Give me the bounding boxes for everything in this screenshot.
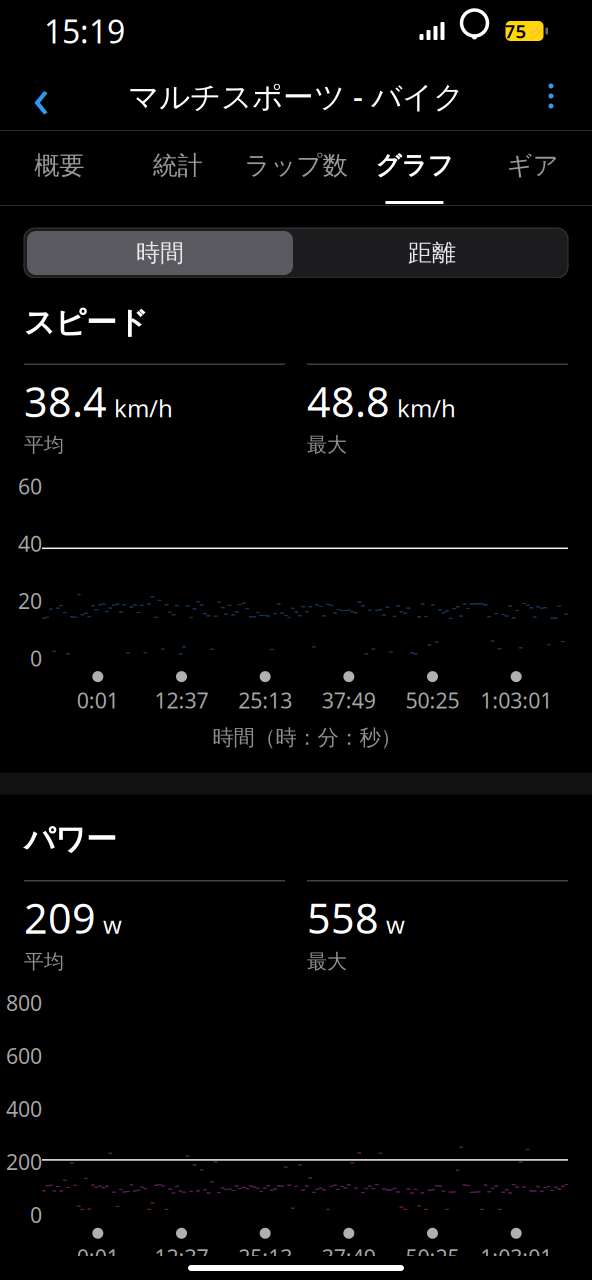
staticText: 400 xyxy=(6,1095,42,1123)
staticText: 40 xyxy=(18,529,42,558)
button[interactable]: ラップ数 xyxy=(237,130,355,206)
staticText: ラップ数 xyxy=(244,150,347,181)
staticText: 0 xyxy=(30,644,42,672)
staticText: 12:37 xyxy=(154,1243,208,1271)
staticText: 200 xyxy=(6,1148,42,1176)
staticText: 0:01 xyxy=(77,1243,119,1271)
staticText: 1:03:01 xyxy=(480,1243,552,1271)
staticText: 12:37 xyxy=(154,686,208,714)
button[interactable]: グラフ xyxy=(355,130,474,206)
button[interactable]: その他のオプション xyxy=(522,67,580,125)
staticText: 時間 xyxy=(136,238,184,268)
staticText: 25:13 xyxy=(238,686,292,714)
staticText: km/h xyxy=(114,392,173,424)
staticText: 0 xyxy=(30,1201,42,1229)
button[interactable]: 統計 xyxy=(118,130,237,206)
staticText: 37:49 xyxy=(322,686,376,714)
button[interactable]: ギア xyxy=(474,130,592,206)
staticText: 75 xyxy=(504,19,526,43)
staticText: ギア xyxy=(507,150,559,181)
staticText: 600 xyxy=(6,1042,42,1070)
staticText: 0:01 xyxy=(77,686,119,714)
staticText: パワー xyxy=(24,821,117,858)
button[interactable]: 時間 xyxy=(24,228,296,278)
staticText: w xyxy=(103,909,122,940)
button[interactable]: 距離 xyxy=(296,228,568,278)
staticText: 平均 xyxy=(24,949,64,974)
staticText: ⚡ xyxy=(526,23,544,39)
button[interactable]: 概要 xyxy=(0,130,118,206)
staticText: 38.4 xyxy=(24,374,107,429)
staticText: 15:19 xyxy=(44,10,125,52)
staticText: 時間（時：分：秒） xyxy=(212,724,401,751)
staticText: グラフ xyxy=(375,150,453,181)
staticText: 209 xyxy=(24,890,96,945)
staticText: 800 xyxy=(6,989,42,1017)
staticText: 概要 xyxy=(34,150,84,181)
button[interactable]: 戻る xyxy=(12,67,70,125)
staticText: 50:25 xyxy=(405,686,459,714)
staticText: 平均 xyxy=(24,433,64,457)
staticText: スピード xyxy=(24,304,148,342)
staticText: km/h xyxy=(397,392,456,424)
staticText: 558 xyxy=(307,890,379,945)
staticText: 距離 xyxy=(408,238,456,268)
staticText: w xyxy=(386,909,405,940)
staticText: 50:25 xyxy=(405,1243,459,1271)
staticText: マルチスポーツ - バイク xyxy=(128,76,464,116)
staticText: ‹ xyxy=(32,59,49,133)
staticText: 1:03:01 xyxy=(480,686,552,714)
staticText: 最大 xyxy=(307,433,347,457)
staticText: 48.8 xyxy=(307,374,390,429)
staticText: 37:49 xyxy=(322,1243,376,1271)
staticText: 統計 xyxy=(153,150,203,181)
staticText: 最大 xyxy=(307,949,347,974)
staticText: 60 xyxy=(18,472,42,500)
staticText: 20 xyxy=(18,587,42,615)
staticText: 25:13 xyxy=(238,1243,292,1271)
